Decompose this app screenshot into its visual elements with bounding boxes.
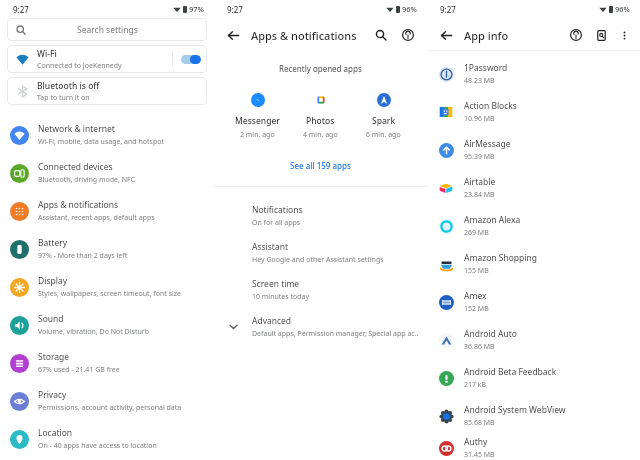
staticText: Screen time <box>252 278 300 290</box>
staticText: Wi-Fi, mobile, data usage, and hotspot <box>38 137 164 147</box>
staticText: 1Password <box>464 62 508 74</box>
staticText: Amazon Shopping <box>464 252 537 264</box>
button[interactable]: Back <box>436 25 456 45</box>
staticText: See all 159 apps <box>290 160 351 171</box>
button[interactable]: Authy <box>427 435 640 460</box>
button[interactable]: Connected devices <box>0 154 214 192</box>
button[interactable]: Amex <box>427 283 640 321</box>
staticText: Tap to turn it on <box>37 93 90 103</box>
staticText: Apps & notifications <box>251 28 371 43</box>
staticText: Apps & notifications <box>38 199 118 211</box>
staticText: 95.39 MB <box>464 152 495 162</box>
button[interactable]: Android Beta Feedback <box>427 359 640 397</box>
staticText: 97% - More than 2 days left <box>38 251 128 261</box>
staticText: 10 minutes today <box>252 292 310 302</box>
staticText: 9:27 <box>440 4 456 15</box>
staticText: Storage <box>38 351 70 363</box>
button[interactable]: 1Password <box>427 55 640 93</box>
staticText: App info <box>464 28 566 43</box>
button[interactable]: Help <box>398 25 418 45</box>
staticText: Connected to JoeKennedy <box>37 61 122 71</box>
staticText: Amex <box>464 290 487 302</box>
button[interactable]: Apps & notifications <box>0 192 214 230</box>
button[interactable]: Android System WebView <box>427 397 640 435</box>
button[interactable]: Battery <box>0 230 214 268</box>
staticText: Advanced <box>252 315 292 327</box>
staticText: Notifications <box>252 204 303 216</box>
staticText: AirMessage <box>464 138 511 150</box>
staticText: Authy <box>464 436 488 448</box>
button[interactable]: Help <box>566 25 586 45</box>
staticText: Default apps, Permission manager, Specia… <box>252 329 419 339</box>
staticText: Search settings <box>77 24 138 36</box>
staticText: Airtable <box>464 176 496 188</box>
staticText: Display <box>38 275 67 287</box>
button[interactable]: Storage <box>0 344 214 382</box>
button[interactable]: Display <box>0 268 214 306</box>
staticText: Bluetooth, driving mode, NFC <box>38 175 136 185</box>
staticText: Photos <box>306 115 335 127</box>
button[interactable]: More options <box>614 25 634 45</box>
staticText: 48.23 MB <box>464 76 495 86</box>
staticText: Action Blocks <box>464 100 517 112</box>
staticText: 9:27 <box>13 4 29 15</box>
staticText: Connected devices <box>38 161 113 173</box>
staticText: Hey Google and other Assistant settings <box>252 255 384 265</box>
staticText: 155 MB <box>464 266 489 276</box>
staticText: On - 40 apps have access to location <box>38 441 157 451</box>
staticText: 4 min. ago <box>303 130 338 140</box>
button[interactable]: Android Auto <box>427 321 640 359</box>
button[interactable]: Screen time <box>214 271 427 308</box>
staticText: Android System WebView <box>464 404 566 416</box>
staticText: Styles, wallpapers, screen timeout, font… <box>38 289 182 299</box>
button[interactable]: Advanced <box>214 308 427 345</box>
staticText: Amazon Alexa <box>464 214 521 226</box>
button[interactable]: Wi-Fi <box>7 45 207 73</box>
button[interactable]: Messenger <box>226 91 289 140</box>
button[interactable]: Notifications <box>214 197 427 234</box>
staticText: Messenger <box>235 115 280 127</box>
staticText: Wi-Fi <box>37 48 57 60</box>
button[interactable]: Network & internet <box>0 116 214 154</box>
button[interactable]: Bluetooth is off <box>7 77 207 105</box>
button[interactable]: Assistant <box>214 234 427 271</box>
staticText: 85.68 MB <box>464 418 495 428</box>
staticText: 96% <box>615 4 630 14</box>
staticText: 10.96 MB <box>464 114 495 124</box>
staticText: Location <box>38 427 73 439</box>
staticText: 217 kB <box>464 380 487 390</box>
button[interactable]: Privacy <box>0 382 214 420</box>
staticText: Android Auto <box>464 328 517 340</box>
button[interactable]: Spark <box>352 91 415 140</box>
button[interactable]: Sound <box>0 306 214 344</box>
button[interactable]: Location <box>0 420 214 458</box>
button[interactable]: Search <box>7 18 207 41</box>
staticText: Permissions, account activity, personal … <box>38 403 182 413</box>
staticText: Privacy <box>38 389 67 401</box>
staticText: Volume, vibration, Do Not Disturb <box>38 327 149 337</box>
staticText: 31.45 MB <box>464 450 495 460</box>
button[interactable]: AirMessage <box>427 131 640 169</box>
button[interactable]: Photos <box>289 91 352 140</box>
button[interactable]: Amazon Alexa <box>427 207 640 245</box>
staticText: 67% used - 21.41 GB free <box>38 365 120 375</box>
staticText: 97% <box>189 4 204 14</box>
button[interactable]: Airtable <box>427 169 640 207</box>
button[interactable] <box>181 55 201 64</box>
staticText: 36.86 MB <box>464 342 495 352</box>
button[interactable]: Action Blocks <box>427 93 640 131</box>
button[interactable]: Amazon Shopping <box>427 245 640 283</box>
staticText: 96% <box>402 4 417 14</box>
staticText: Assistant, recent apps, default apps <box>38 213 155 223</box>
button[interactable]: See all 159 apps <box>284 158 357 173</box>
button[interactable]: Show system <box>591 25 611 45</box>
staticText: On for all apps <box>252 218 301 228</box>
staticText: 6 min. ago <box>366 130 401 140</box>
staticText: Assistant <box>252 241 288 253</box>
staticText: Sound <box>38 313 64 325</box>
button[interactable]: Search <box>371 25 391 45</box>
staticText: 23.84 MB <box>464 190 495 200</box>
staticText: Network & internet <box>38 123 115 135</box>
button[interactable]: Back <box>223 25 243 45</box>
staticText: Spark <box>372 115 396 127</box>
